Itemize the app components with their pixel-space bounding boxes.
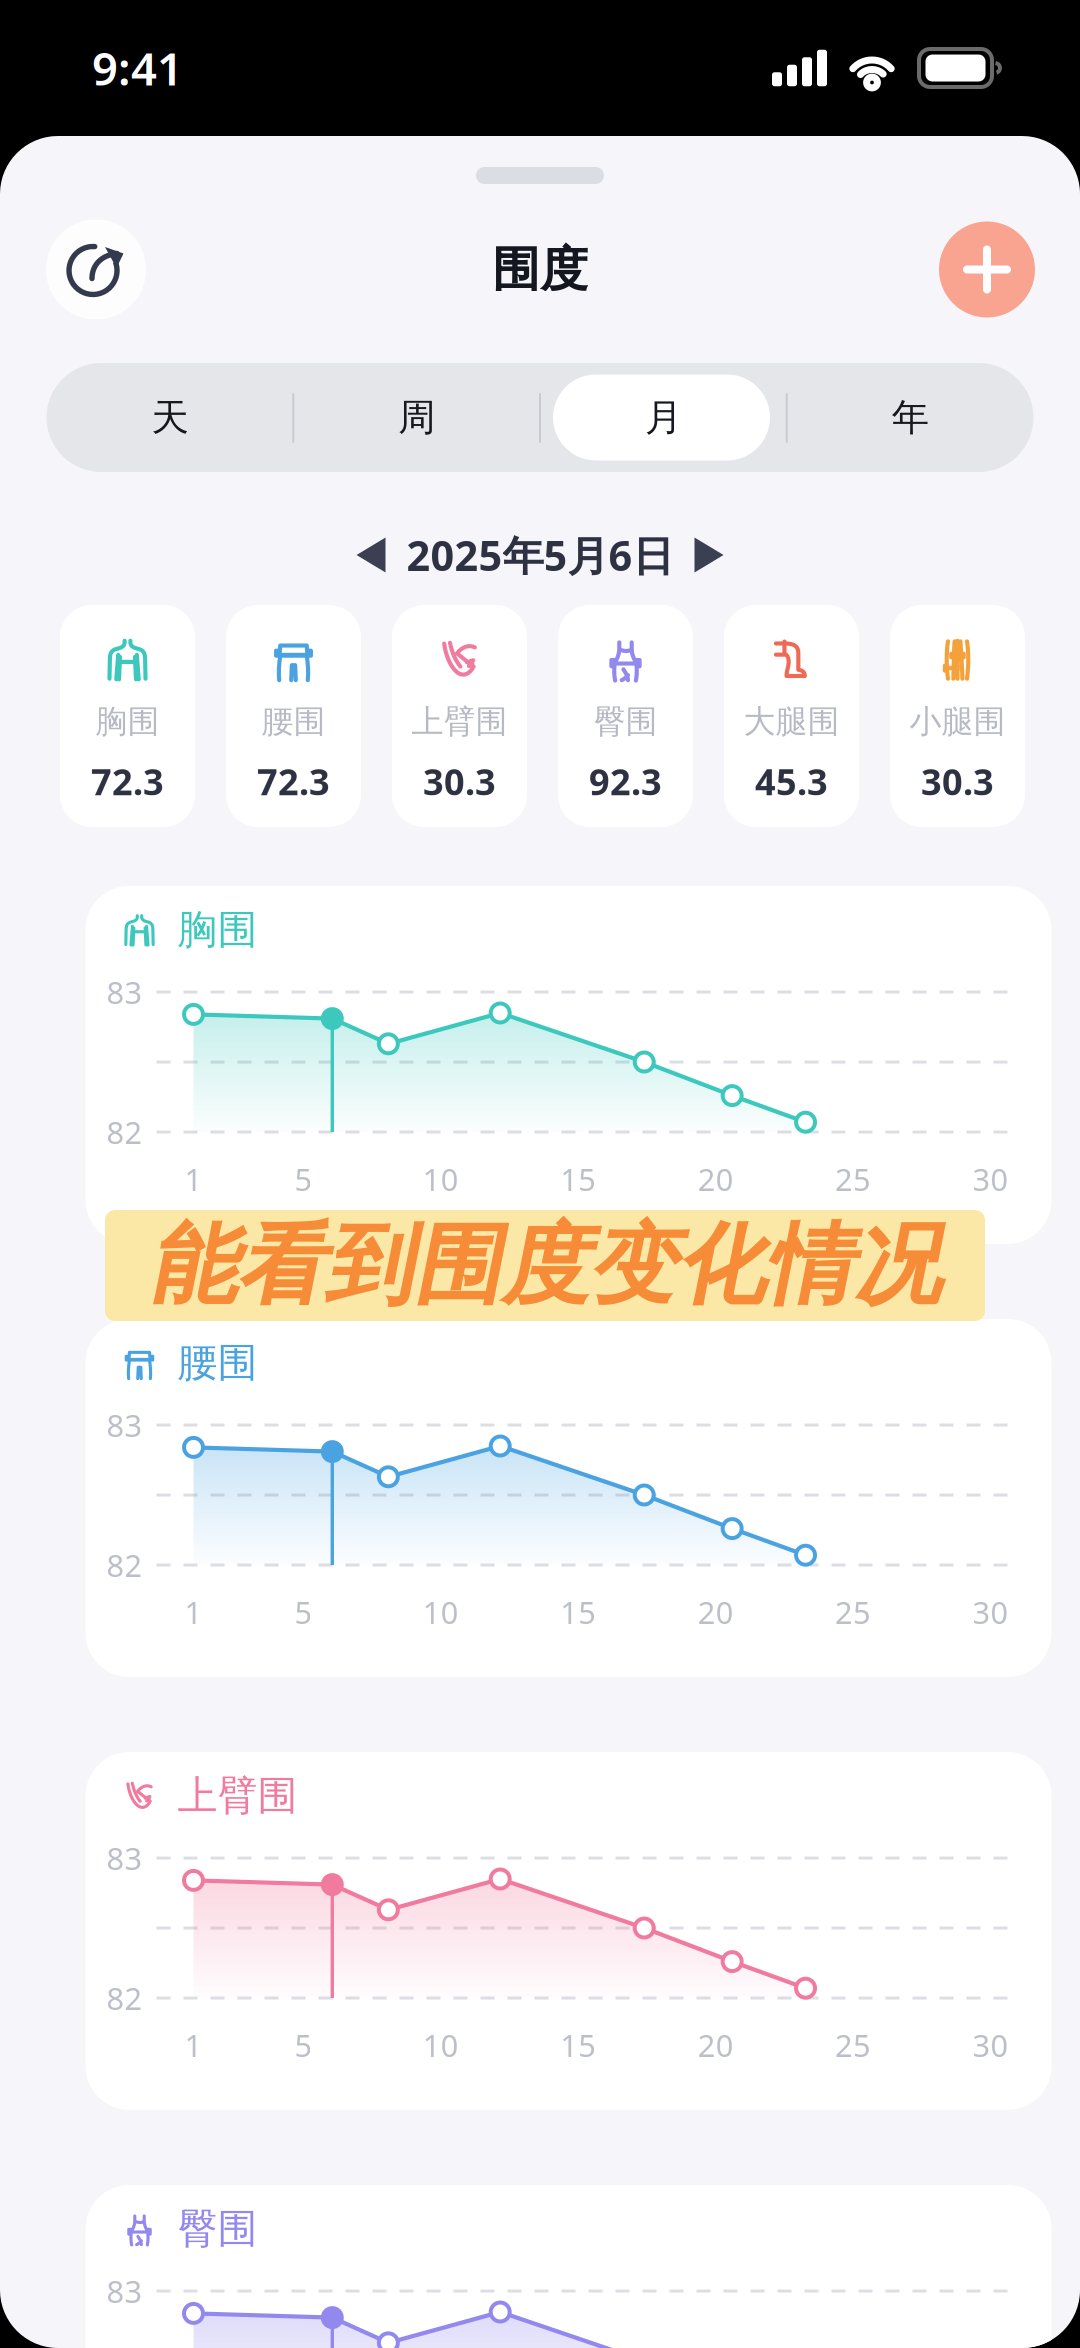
staticText: 腰围 bbox=[261, 702, 325, 741]
staticText: 10 bbox=[423, 1159, 459, 1199]
staticText: 30 bbox=[972, 1592, 1008, 1632]
staticText: 83 bbox=[106, 1838, 142, 1878]
staticText: 30.3 bbox=[423, 757, 496, 805]
staticText: 2025年5月6日 bbox=[406, 528, 673, 582]
button[interactable]: 天 bbox=[46, 363, 293, 472]
staticText: 1 bbox=[184, 1592, 202, 1632]
staticText: 72.3 bbox=[91, 757, 164, 805]
staticText: 胸围 bbox=[177, 905, 257, 954]
staticText: 30 bbox=[972, 1159, 1008, 1199]
staticText: 30 bbox=[972, 2025, 1008, 2065]
staticText: 82 bbox=[106, 1112, 142, 1152]
staticText: 25 bbox=[835, 1159, 871, 1199]
staticText: 上臂围 bbox=[177, 1771, 297, 1820]
button[interactable]: 周 bbox=[293, 363, 540, 472]
staticText: 围度 bbox=[492, 240, 588, 299]
staticText: 25 bbox=[835, 1592, 871, 1632]
button[interactable]: 腰围 bbox=[226, 605, 361, 827]
staticText: 15 bbox=[560, 1159, 596, 1199]
staticText: 月 bbox=[645, 395, 682, 440]
button[interactable]: 分享 bbox=[46, 219, 146, 319]
staticText: 1 bbox=[184, 1159, 202, 1199]
staticText: 小腿围 bbox=[909, 702, 1005, 741]
staticText: 45.3 bbox=[755, 757, 828, 805]
staticText: 能看到围度变化情况 bbox=[149, 1211, 941, 1320]
staticText: 9:41 bbox=[92, 38, 183, 98]
staticText: 72.3 bbox=[257, 757, 330, 805]
staticText: 5 bbox=[294, 2025, 312, 2065]
button[interactable]: 小腿围 bbox=[890, 605, 1025, 827]
staticText: 83 bbox=[106, 2271, 142, 2311]
staticText: 10 bbox=[423, 1592, 459, 1632]
button[interactable]: 上臂围 bbox=[392, 605, 527, 827]
staticText: 臀围 bbox=[593, 702, 657, 741]
staticText: 大腿围 bbox=[743, 702, 839, 741]
staticText: 82 bbox=[106, 1545, 142, 1585]
staticText: 上臂围 bbox=[411, 702, 507, 741]
button[interactable]: 添加 bbox=[939, 221, 1035, 317]
button[interactable]: 年 bbox=[787, 363, 1034, 472]
staticText: 30.3 bbox=[921, 757, 994, 805]
staticText: 15 bbox=[560, 2025, 596, 2065]
button[interactable]: 下一天 bbox=[684, 525, 733, 584]
button[interactable]: 月 bbox=[540, 363, 787, 472]
button[interactable]: 大腿围 bbox=[724, 605, 859, 827]
staticText: 15 bbox=[560, 1592, 596, 1632]
button[interactable]: 臀围 bbox=[558, 605, 693, 827]
staticText: 周 bbox=[398, 395, 435, 440]
staticText: 年 bbox=[892, 395, 929, 440]
button[interactable]: 胸围 bbox=[60, 605, 195, 827]
staticText: 20 bbox=[698, 1159, 734, 1199]
staticText: 5 bbox=[294, 1592, 312, 1632]
staticText: 83 bbox=[106, 1405, 142, 1445]
staticText: 83 bbox=[106, 972, 142, 1012]
staticText: 天 bbox=[151, 395, 188, 440]
staticText: 1 bbox=[184, 2025, 202, 2065]
staticText: 92.3 bbox=[589, 757, 662, 805]
staticText: 胸围 bbox=[95, 702, 159, 741]
staticText: 25 bbox=[835, 2025, 871, 2065]
staticText: 臀围 bbox=[177, 2204, 257, 2253]
staticText: 82 bbox=[106, 1978, 142, 2018]
staticText: 20 bbox=[698, 1592, 734, 1632]
button[interactable]: 上一天 bbox=[346, 525, 395, 584]
staticText: 5 bbox=[294, 1159, 312, 1199]
staticText: 10 bbox=[423, 2025, 459, 2065]
staticText: 腰围 bbox=[177, 1338, 257, 1387]
staticText: 20 bbox=[698, 2025, 734, 2065]
